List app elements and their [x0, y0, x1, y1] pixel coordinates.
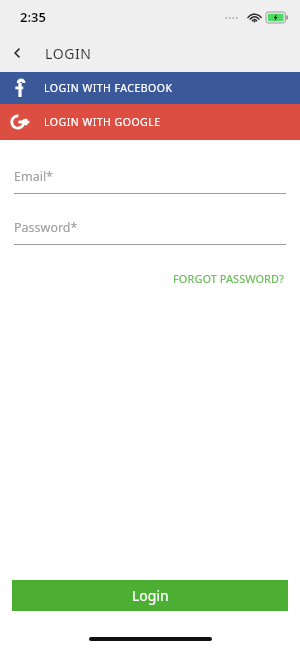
staticText: Login	[132, 586, 169, 605]
button[interactable]: Password*	[14, 219, 286, 245]
staticText: LOGIN WITH FACEBOOK	[44, 81, 173, 95]
staticText: FORGOT PASSWORD?	[173, 271, 284, 286]
button[interactable]: FORGOT PASSWORD?	[171, 267, 286, 290]
staticText: Email*	[14, 168, 53, 185]
staticText: Password*	[14, 219, 78, 236]
button[interactable]: LOGIN WITH FACEBOOK	[0, 72, 300, 104]
button[interactable]: Back	[0, 36, 34, 70]
staticText: LOGIN WITH GOOGLE	[44, 115, 161, 129]
button[interactable]: Email*	[14, 168, 286, 194]
staticText: 2:35	[20, 8, 46, 26]
staticText: LOGIN	[45, 44, 92, 63]
button[interactable]: LOGIN WITH GOOGLE	[0, 104, 300, 140]
button[interactable]: Login	[12, 580, 288, 611]
